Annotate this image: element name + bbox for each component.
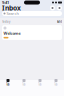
button[interactable]: Filter [50, 5, 55, 10]
button[interactable]: Tab [32, 79, 48, 86]
button[interactable]: Tab [16, 79, 32, 86]
staticText: Inbox [2, 4, 21, 12]
staticText: Today [2, 20, 10, 23]
staticText: Edit [57, 20, 62, 23]
staticText: Welcome [3, 30, 20, 36]
staticText: 9:41 [2, 0, 9, 5]
staticText: Tab [38, 83, 42, 86]
staticText: Tab [22, 83, 26, 86]
button[interactable]: Compose [55, 5, 62, 10]
staticText: Tab [54, 83, 58, 86]
button[interactable]: Search [2, 11, 62, 16]
button[interactable]: Tab [48, 79, 64, 86]
button[interactable]: Welcome [2, 25, 62, 40]
button[interactable]: Tab [0, 79, 16, 86]
staticText: Tab [6, 83, 10, 86]
staticText: Search [6, 11, 18, 16]
